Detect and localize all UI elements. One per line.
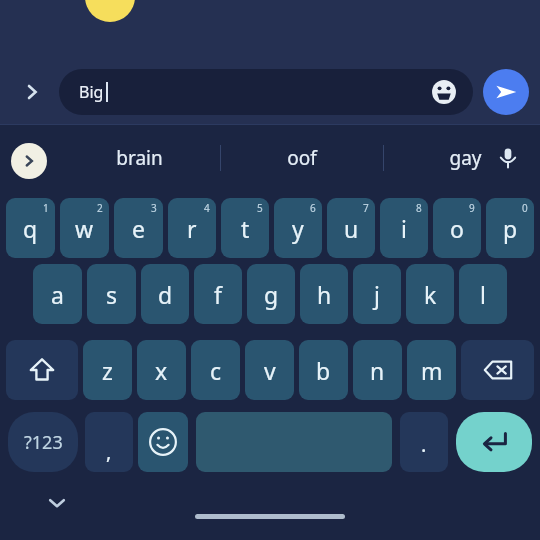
button[interactable]: brain — [58, 125, 220, 190]
button[interactable]: . — [400, 412, 448, 472]
button[interactable]: h — [300, 264, 348, 324]
button[interactable]: , — [85, 412, 133, 472]
button[interactable]: n — [353, 340, 402, 400]
button[interactable]: Emoji — [429, 77, 459, 107]
staticText: a — [51, 279, 64, 310]
button[interactable]: k — [406, 264, 454, 324]
staticText: q — [23, 213, 38, 244]
button[interactable]: x — [137, 340, 186, 400]
staticText: t — [241, 213, 250, 244]
staticText: e — [132, 213, 145, 244]
button[interactable]: t — [221, 198, 269, 258]
button[interactable]: f — [194, 264, 242, 324]
staticText: 4 — [204, 201, 210, 215]
staticText: 8 — [416, 201, 422, 215]
staticText: l — [480, 279, 486, 310]
staticText: 7 — [363, 201, 369, 215]
staticText: u — [344, 213, 359, 244]
staticText: f — [214, 279, 222, 310]
button[interactable]: Enter — [456, 412, 532, 472]
button[interactable]: Big — [59, 69, 473, 115]
staticText: 2 — [97, 201, 103, 215]
staticText: r — [187, 213, 197, 244]
staticText: z — [102, 355, 113, 386]
staticText: . — [421, 431, 427, 458]
button[interactable]: ?123 — [8, 412, 78, 472]
button[interactable]: z — [83, 340, 132, 400]
button[interactable]: Backspace — [461, 340, 534, 400]
staticText: i — [401, 213, 407, 244]
staticText: o — [450, 213, 464, 244]
button[interactable]: w — [60, 198, 109, 258]
button[interactable]: l — [459, 264, 507, 324]
staticText: m — [421, 355, 443, 386]
staticText: d — [158, 279, 173, 310]
staticText: ?123 — [24, 430, 63, 455]
button[interactable]: s — [87, 264, 136, 324]
button[interactable]: o — [433, 198, 481, 258]
button[interactable]: j — [353, 264, 401, 324]
button[interactable]: d — [141, 264, 189, 324]
button[interactable]: Expand actions — [12, 72, 52, 112]
staticText: n — [370, 355, 385, 386]
button[interactable]: v — [245, 340, 294, 400]
staticText: 6 — [310, 201, 316, 215]
button[interactable]: More suggestions — [11, 143, 47, 179]
button[interactable]: e — [114, 198, 163, 258]
staticText: y — [292, 213, 304, 244]
button[interactable]: Send — [483, 69, 529, 115]
button[interactable]: r — [168, 198, 216, 258]
staticText: brain — [116, 145, 163, 171]
button[interactable]: g — [247, 264, 295, 324]
button[interactable]: Space — [196, 412, 392, 472]
staticText: p — [503, 213, 518, 244]
staticText: j — [374, 279, 380, 310]
staticText: b — [316, 355, 331, 386]
button[interactable]: i — [380, 198, 428, 258]
button[interactable]: gay — [384, 125, 540, 190]
staticText: gay — [449, 145, 482, 171]
staticText: h — [317, 279, 332, 310]
button[interactable]: a — [33, 264, 82, 324]
button[interactable]: Hide keyboard — [36, 482, 78, 524]
staticText: x — [155, 355, 168, 386]
staticText: 5 — [257, 201, 263, 215]
button[interactable]: Voice input — [488, 138, 528, 178]
button[interactable]: p — [486, 198, 534, 258]
staticText: s — [106, 279, 118, 310]
staticText: g — [264, 279, 279, 310]
staticText: k — [424, 279, 437, 310]
staticText: 9 — [469, 201, 475, 215]
staticText: , — [106, 438, 112, 465]
staticText: 1 — [43, 201, 49, 215]
staticText: 0 — [522, 201, 528, 215]
staticText: oof — [287, 145, 317, 171]
button[interactable]: Emoji keyboard — [138, 412, 188, 472]
staticText: v — [264, 355, 276, 386]
staticText: 3 — [151, 201, 157, 215]
button[interactable]: u — [327, 198, 375, 258]
staticText: w — [75, 213, 94, 244]
button[interactable]: c — [191, 340, 240, 400]
button[interactable]: y — [274, 198, 322, 258]
staticText: Big — [79, 81, 104, 103]
button[interactable]: Shift — [6, 340, 78, 400]
button[interactable]: b — [299, 340, 348, 400]
staticText: c — [210, 355, 222, 386]
button[interactable]: m — [407, 340, 456, 400]
button[interactable]: oof — [221, 125, 383, 190]
button[interactable]: q — [6, 198, 55, 258]
